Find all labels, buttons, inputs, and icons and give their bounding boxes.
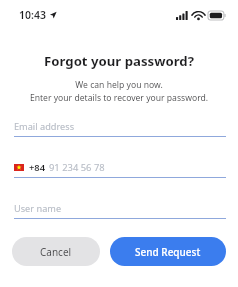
button[interactable]: Send Request — [110, 237, 226, 266]
staticText: Send Request — [135, 245, 201, 259]
staticText: We can help you now. — [0, 79, 238, 91]
staticText: 10:43 — [19, 8, 46, 22]
button[interactable]: Email address — [14, 120, 226, 137]
staticText: +84 — [29, 161, 46, 174]
staticText: Forgot your password? — [0, 52, 238, 70]
staticText: Cancel — [40, 245, 72, 259]
staticText: User name — [14, 202, 62, 215]
button[interactable]: Cancel — [12, 237, 100, 266]
staticText: Email address — [14, 120, 75, 133]
staticText: Enter your details to recover your passw… — [0, 92, 238, 104]
staticText: 91 234 56 78 — [49, 161, 105, 174]
button[interactable]: +84 — [14, 161, 226, 178]
button[interactable]: User name — [14, 202, 226, 219]
